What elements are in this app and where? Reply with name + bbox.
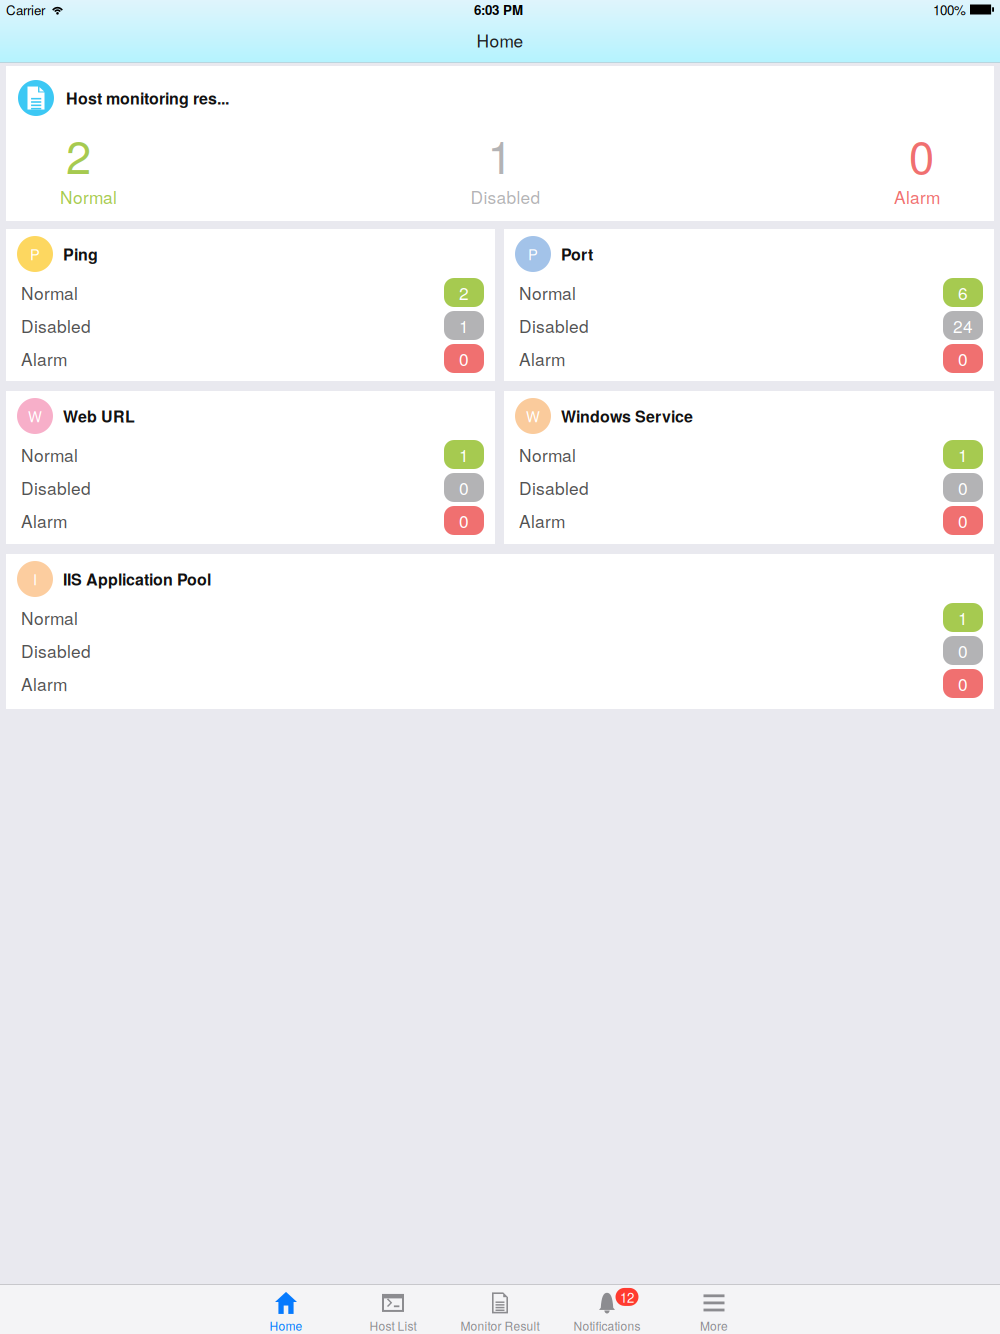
staticText: Home [269, 1317, 302, 1334]
staticText: Alarm [519, 508, 565, 533]
staticText: Normal [21, 280, 78, 305]
staticText: 0 [459, 475, 469, 500]
button[interactable]: 12 [553, 1285, 660, 1334]
staticText: Alarm [519, 346, 565, 371]
staticText: Home [476, 28, 523, 52]
staticText: Normal [519, 442, 576, 467]
staticText: Alarm [21, 346, 67, 371]
staticText: Web URL [63, 404, 135, 427]
staticText: 6:03 PM [474, 0, 523, 19]
staticText: Disabled [21, 313, 91, 338]
staticText: 0 [958, 475, 968, 500]
staticText: Alarm [894, 184, 940, 209]
staticText: P [528, 243, 538, 264]
staticText: Port [561, 242, 593, 265]
staticText: 0 [958, 346, 968, 371]
staticText: Host monitoring res... [66, 86, 229, 109]
staticText: 0 [958, 508, 968, 533]
staticText: Disabled [21, 638, 91, 663]
staticText: Monitor Result [460, 1317, 539, 1334]
staticText: W [526, 405, 540, 426]
staticText: Disabled [519, 475, 589, 500]
staticText: 1 [459, 442, 469, 467]
button[interactable]: P [504, 229, 994, 381]
staticText: Normal [60, 184, 117, 209]
staticText: 12 [620, 1287, 634, 1306]
staticText: 24 [953, 313, 973, 338]
button[interactable]: Monitor Result [446, 1285, 553, 1334]
staticText: Disabled [470, 184, 540, 209]
staticText: 0 [459, 346, 469, 371]
staticText: 1 [459, 313, 469, 338]
staticText: Ping [63, 242, 98, 265]
staticText: Alarm [21, 508, 67, 533]
button[interactable]: More [660, 1285, 767, 1334]
staticText: P [30, 243, 40, 264]
staticText: Disabled [519, 313, 589, 338]
staticText: I [33, 568, 37, 589]
button[interactable]: W [504, 391, 994, 544]
staticText: W [28, 405, 42, 426]
button[interactable]: Host monitoring res... [6, 66, 994, 221]
staticText: 100% [933, 0, 966, 19]
button[interactable]: W [6, 391, 495, 544]
staticText: Carrier [6, 0, 45, 19]
staticText: More [700, 1317, 728, 1334]
staticText: Windows Service [561, 404, 693, 427]
staticText: IIS Application Pool [63, 567, 211, 590]
staticText: 0 [909, 122, 934, 187]
button[interactable]: I [6, 554, 994, 709]
staticText: Disabled [21, 475, 91, 500]
staticText: 0 [958, 671, 968, 696]
staticText: Normal [519, 280, 576, 305]
staticText: 2 [66, 122, 91, 187]
staticText: 6 [958, 280, 968, 305]
staticText: 0 [459, 508, 469, 533]
staticText: Host List [369, 1317, 416, 1334]
staticText: Normal [21, 442, 78, 467]
staticText: 1 [958, 605, 968, 630]
staticText: 0 [958, 638, 968, 663]
staticText: Notifications [573, 1317, 640, 1334]
staticText: 1 [958, 442, 968, 467]
button[interactable]: Home [232, 1285, 339, 1334]
button[interactable]: P [6, 229, 495, 381]
staticText: Normal [21, 605, 78, 630]
staticText: Alarm [21, 671, 67, 696]
button[interactable]: Host List [339, 1285, 446, 1334]
staticText: 2 [459, 280, 469, 305]
staticText: 1 [487, 122, 512, 187]
